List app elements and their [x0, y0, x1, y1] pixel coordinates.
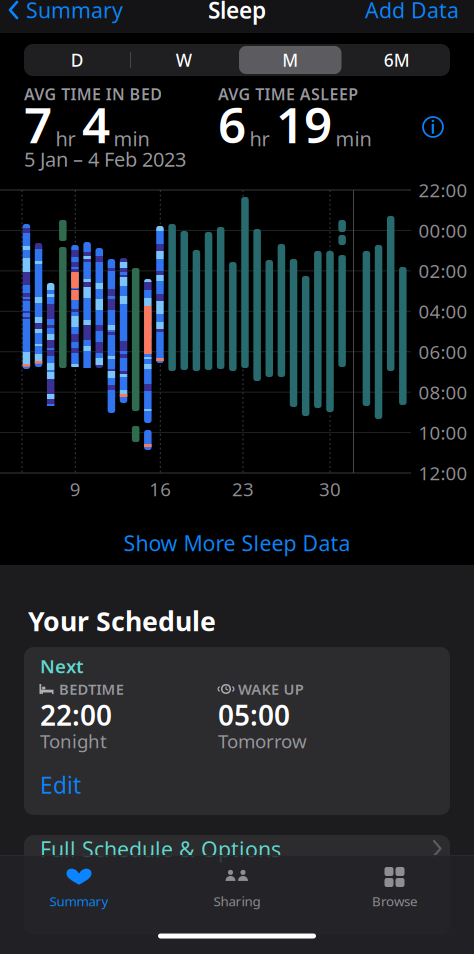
- staticText: 9: [70, 477, 81, 501]
- staticText: Add Data: [365, 0, 459, 24]
- button[interactable]: D: [37, 45, 117, 75]
- staticText: Sharing: [213, 892, 260, 910]
- staticText: Show More Sleep Data: [123, 529, 350, 557]
- staticText: 22:00: [418, 178, 467, 202]
- button[interactable]: Sharing: [172, 855, 302, 913]
- staticText: 02:00: [418, 258, 467, 283]
- staticText: WAKE UP: [238, 679, 304, 699]
- staticText: 10:00: [418, 420, 467, 445]
- staticText: Tomorrow: [218, 729, 307, 753]
- staticText: D: [71, 48, 84, 71]
- staticText: BEDTIME: [59, 679, 124, 699]
- staticText: 19: [276, 91, 332, 157]
- staticText: 6: [218, 91, 246, 157]
- button[interactable]: Summary: [14, 855, 144, 913]
- staticText: W: [176, 48, 192, 71]
- staticText: 7: [24, 91, 52, 157]
- staticText: Next: [40, 654, 84, 678]
- staticText: 08:00: [418, 380, 467, 405]
- staticText: 6M: [384, 48, 410, 71]
- staticText: 05:00: [218, 696, 290, 734]
- button[interactable]: i: [421, 115, 445, 139]
- staticText: hr: [55, 125, 75, 152]
- button[interactable]: Summary: [9, 0, 179, 22]
- staticText: AVG TIME ASLEEP: [218, 83, 358, 105]
- staticText: Edit: [40, 770, 81, 800]
- staticText: Your Schedule: [28, 603, 216, 639]
- button[interactable]: M: [250, 45, 330, 75]
- staticText: min: [335, 125, 371, 152]
- staticText: hr: [249, 125, 269, 152]
- button[interactable]: Full Schedule & Options: [24, 835, 450, 935]
- button[interactable]: Browse: [330, 855, 460, 913]
- staticText: 06:00: [418, 339, 467, 364]
- staticText: Summary: [49, 892, 108, 910]
- staticText: Browse: [372, 892, 418, 910]
- staticText: Summary: [26, 0, 123, 24]
- staticText: 00:00: [418, 218, 467, 243]
- staticText: Sleep: [208, 0, 266, 25]
- button[interactable]: W: [144, 45, 224, 75]
- staticText: 30: [319, 477, 341, 501]
- button[interactable]: 6M: [357, 45, 437, 75]
- button[interactable]: Edit: [40, 770, 100, 800]
- staticText: 5 Jan – 4 Feb 2023: [24, 146, 186, 172]
- staticText: Full Schedule & Options: [40, 835, 281, 863]
- staticText: 12:00: [418, 461, 467, 485]
- staticText: 04:00: [418, 299, 467, 324]
- staticText: 16: [149, 477, 171, 501]
- button[interactable]: Show More Sleep Data: [123, 529, 350, 557]
- staticText: AVG TIME IN BED: [24, 83, 162, 105]
- staticText: min: [113, 125, 149, 152]
- button[interactable]: Add Data: [365, 0, 459, 24]
- staticText: 22:00: [40, 696, 112, 734]
- staticText: i: [430, 115, 435, 138]
- staticText: 23: [232, 477, 254, 501]
- staticText: Tonight: [40, 729, 107, 753]
- staticText: M: [282, 48, 298, 71]
- staticText: 4: [82, 91, 110, 157]
